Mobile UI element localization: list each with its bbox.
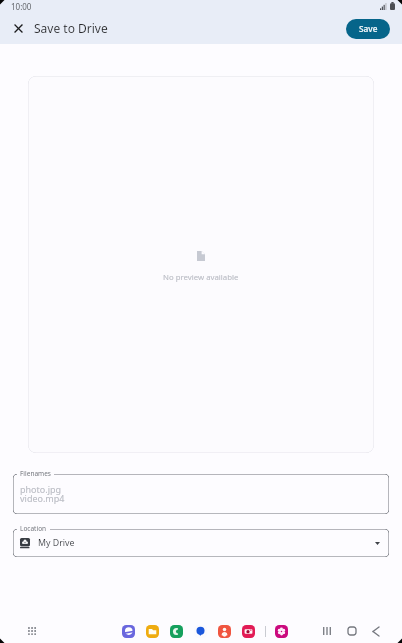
staticText: Save to Drive <box>34 20 108 36</box>
staticText: 10:00 <box>11 1 32 12</box>
button[interactable]: Recents <box>317 621 337 641</box>
button[interactable]: All apps <box>22 621 42 641</box>
button[interactable]: PERSON <box>218 625 231 638</box>
button[interactable]: Home <box>342 621 362 641</box>
button[interactable]: Close <box>7 17 29 39</box>
button[interactable]: GLOBE <box>122 625 135 638</box>
staticText: Save <box>359 23 378 34</box>
button[interactable]: Back <box>366 621 386 641</box>
staticText: photo.jpg video.mp4 <box>20 483 65 505</box>
staticText: Filenames <box>20 469 51 478</box>
button[interactable]: LETTER_C <box>170 625 183 638</box>
button[interactable]: FOLDER <box>146 625 159 638</box>
button[interactable]: Save <box>346 19 390 39</box>
staticText: My Drive <box>38 537 75 549</box>
staticText: No preview available <box>163 272 239 283</box>
button[interactable]: CHAT <box>194 625 207 638</box>
button[interactable]: photo.jpg video.mp4 <box>13 474 389 514</box>
button[interactable]: FLOWER <box>275 625 288 638</box>
staticText: Location <box>20 524 47 533</box>
button[interactable]: My Drive <box>13 529 389 557</box>
button[interactable]: CAMERA <box>242 625 255 638</box>
